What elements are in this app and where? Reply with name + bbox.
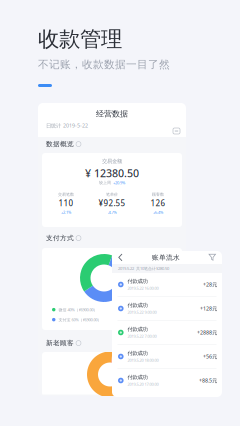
- button[interactable]: 付款成功: [112, 321, 222, 345]
- staticText: +56元: [203, 353, 217, 360]
- staticText: 日统计 2019-5-22: [46, 122, 88, 129]
- staticText: 账单流水: [152, 253, 180, 262]
- staticText: +28元: [203, 281, 217, 288]
- staticText: 新老顾客: [46, 339, 74, 347]
- staticText: -4.7%: [107, 209, 116, 215]
- staticText: 2019-5-22 16:00:00: [128, 286, 159, 291]
- staticText: 2019-5-22 共10笔合计¥280.50: [118, 266, 169, 271]
- staticText: +6.4%: [153, 209, 163, 215]
- staticText: 较上周: [99, 180, 111, 185]
- staticText: +20.9%: [113, 180, 125, 185]
- staticText: 经营数据: [96, 109, 128, 119]
- staticText: 笔单价: [106, 192, 118, 197]
- staticText: ¥92.55: [98, 198, 125, 208]
- staticText: +2888元: [197, 329, 217, 336]
- staticText: +128元: [200, 305, 217, 312]
- staticText: 付款成功: [128, 374, 148, 381]
- staticText: 付款成功: [128, 278, 148, 285]
- staticText: 110: [58, 198, 73, 208]
- staticText: 数据概览: [46, 140, 74, 148]
- button[interactable]: 付款成功: [112, 273, 222, 297]
- button[interactable]: 付款成功: [112, 369, 222, 393]
- staticText: 2019-5-22 7:00:00: [128, 334, 157, 339]
- staticText: 付款成功: [128, 326, 148, 333]
- button[interactable]: 付款成功: [112, 297, 222, 321]
- staticText: +88.5元: [199, 377, 217, 384]
- staticText: 2019-5-20 17:00:00: [128, 382, 159, 387]
- staticText: ¥ 12380.50: [85, 166, 139, 180]
- staticText: 不记账，收款数据一目了然: [38, 58, 170, 71]
- staticText: 2019-5-20 18:00:00: [128, 358, 159, 363]
- staticText: 付款成功: [128, 350, 148, 357]
- staticText: 支付方式: [46, 234, 74, 242]
- staticText: 支付宝 60%（¥6900.00）: [58, 317, 101, 322]
- staticText: 2019-5-22 9:00:00: [128, 310, 157, 315]
- staticText: 交易笔数: [58, 192, 74, 197]
- staticText: 微信 40%（¥6900.00）: [58, 307, 97, 312]
- staticText: 付款成功: [128, 302, 148, 309]
- staticText: 收款管理: [38, 26, 122, 52]
- staticText: +2.1%: [61, 209, 71, 215]
- staticText: 顾客数: [152, 192, 164, 197]
- staticText: 交易金额: [102, 158, 122, 165]
- staticText: 126: [150, 198, 165, 208]
- button[interactable]: 付款成功: [112, 345, 222, 369]
